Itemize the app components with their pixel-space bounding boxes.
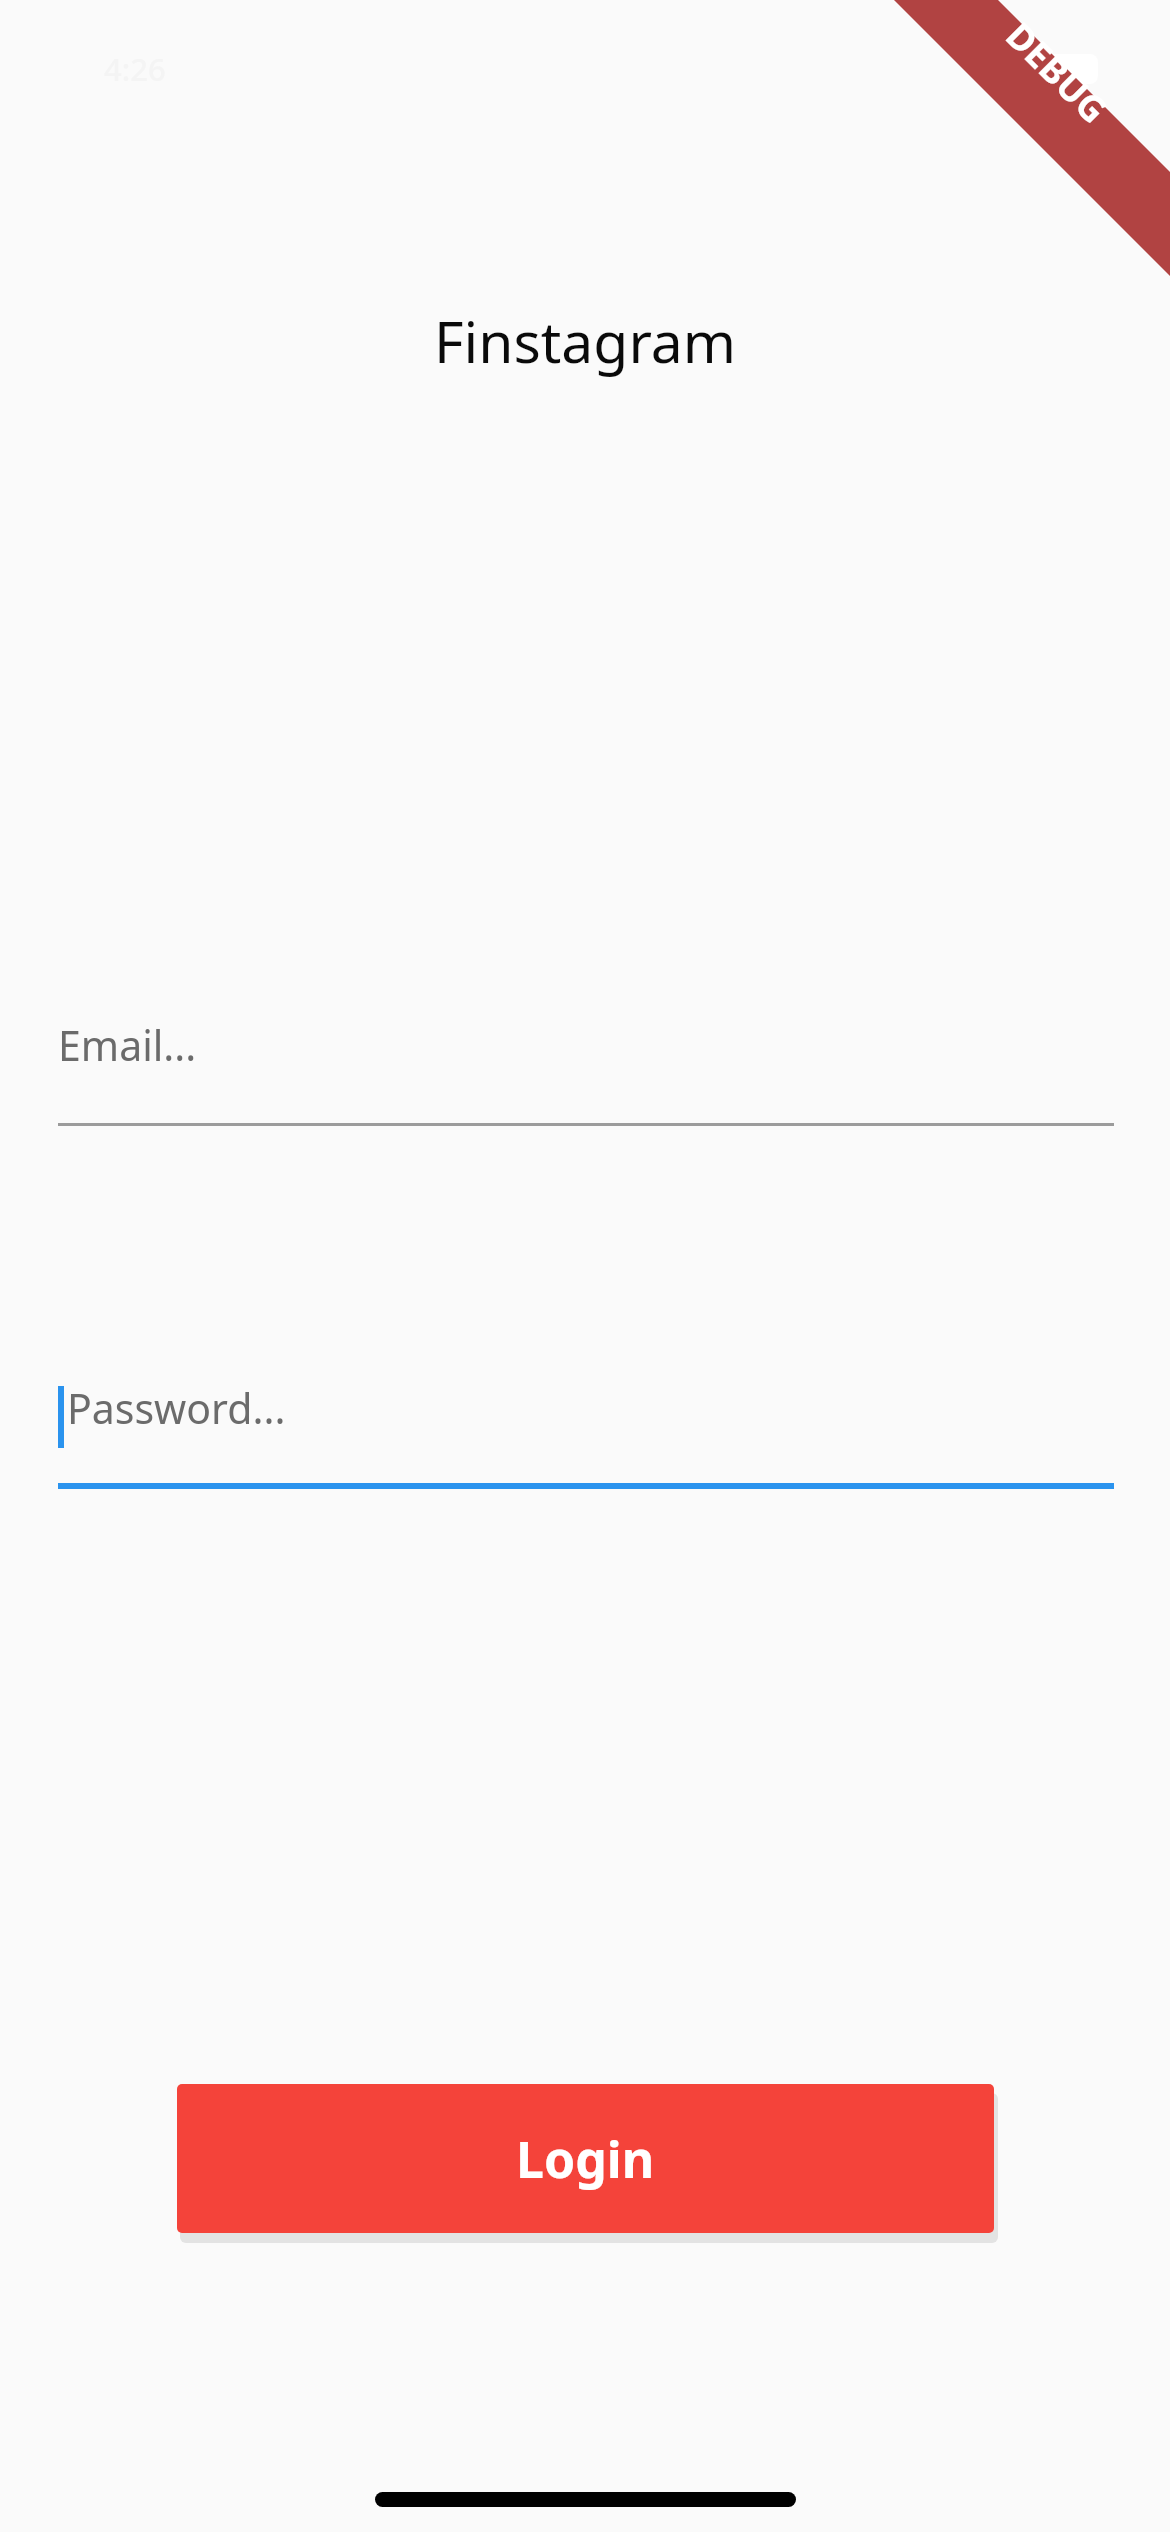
button[interactable]: Login [177,2084,994,2233]
other: Wi-Fi signal [972,50,1014,80]
other: Battery [1036,54,1098,84]
staticText: Finstagram [0,302,1170,380]
staticText: DEBUG [996,11,1118,134]
staticText: Login [516,2125,655,2193]
staticText: Password... [67,1380,286,1436]
staticText: Email... [58,1017,197,1073]
button[interactable]: Password... [58,1358,1114,1489]
button[interactable]: Email... [58,995,1114,1126]
